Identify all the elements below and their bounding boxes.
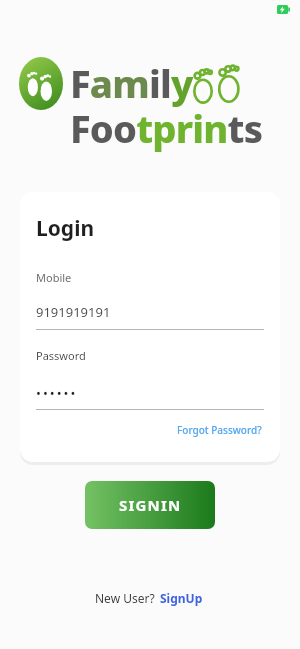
staticText: SIGNIN: [119, 495, 182, 515]
staticText: SignUp: [160, 590, 203, 606]
staticText: New User?: [95, 590, 158, 606]
staticText: Family: [70, 57, 193, 109]
staticText: ••••••: [36, 384, 78, 402]
button[interactable]: ••••••: [36, 384, 264, 402]
staticText: Footprints: [70, 102, 263, 154]
staticText: Mobile: [36, 270, 72, 285]
other: Battery charging: [277, 5, 290, 14]
staticText: Login: [36, 214, 95, 243]
button[interactable]: 9191919191: [36, 303, 264, 321]
button[interactable]: Forgot Password?: [175, 421, 264, 439]
staticText: Password: [36, 348, 86, 363]
button[interactable]: SignUp: [158, 588, 205, 608]
staticText: Forgot Password?: [177, 423, 262, 437]
staticText: 9191919191: [36, 303, 111, 321]
button[interactable]: SIGNIN: [85, 481, 215, 529]
